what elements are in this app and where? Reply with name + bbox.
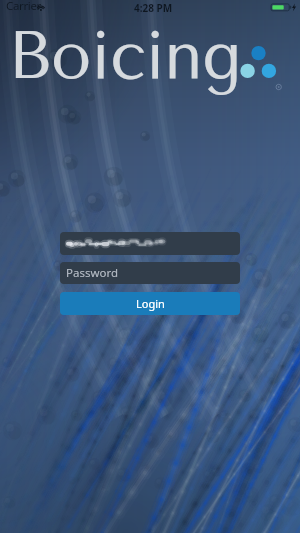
staticText: Password [66,265,119,281]
button[interactable]: Password [60,262,240,284]
button[interactable]: Login [60,292,240,315]
staticText: Login [136,296,165,311]
staticText: Carrier [6,0,41,14]
button[interactable]: Email address [60,232,240,255]
staticText: Boicing [8,17,241,94]
staticText: 4:28 PM [134,1,173,15]
